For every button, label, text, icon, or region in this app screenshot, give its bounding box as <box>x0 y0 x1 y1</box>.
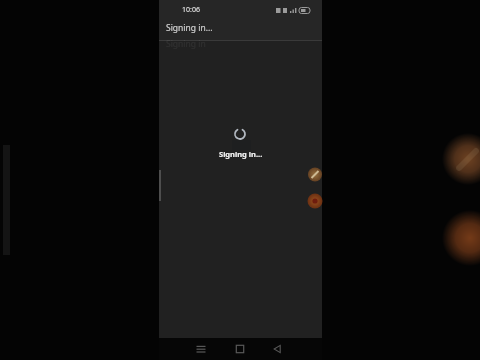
staticText: Signing in <box>166 38 206 50</box>
staticText: Signing in... <box>166 22 213 34</box>
button[interactable] <box>307 193 323 209</box>
button[interactable] <box>230 338 249 360</box>
button[interactable] <box>191 338 210 360</box>
button[interactable] <box>307 167 323 183</box>
button[interactable] <box>267 338 286 360</box>
staticText: 10:06 <box>182 5 200 15</box>
staticText: Signing in... <box>219 149 263 159</box>
